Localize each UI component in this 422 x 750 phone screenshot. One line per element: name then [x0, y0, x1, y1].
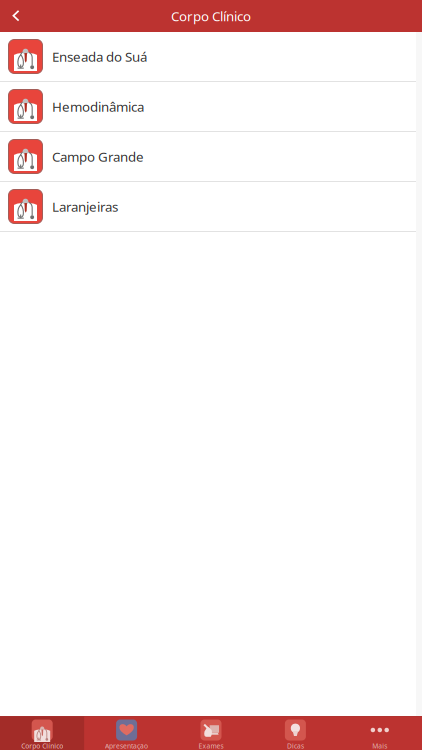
- button[interactable]: Corpo Clínico: [0, 716, 84, 750]
- button[interactable]: Laranjeiras: [0, 182, 422, 232]
- staticText: Campo Grande: [52, 148, 144, 165]
- button[interactable]: Exames: [169, 716, 253, 750]
- staticText: Dicas: [287, 741, 304, 750]
- button[interactable]: Apresentação: [84, 716, 169, 750]
- staticText: Hemodinâmica: [52, 98, 144, 115]
- button[interactable]: Mais: [338, 716, 422, 750]
- staticText: Mais: [372, 741, 387, 750]
- button[interactable]: Campo Grande: [0, 132, 422, 182]
- staticText: Apresentação: [105, 741, 148, 750]
- staticText: Exames: [198, 741, 223, 750]
- staticText: Enseada do Suá: [52, 48, 147, 65]
- button[interactable]: Back: [0, 0, 32, 32]
- button[interactable]: Hemodinâmica: [0, 82, 422, 132]
- staticText: Corpo Clínico: [171, 7, 251, 25]
- staticText: Corpo Clínico: [21, 741, 63, 750]
- staticText: Laranjeiras: [52, 198, 118, 215]
- button[interactable]: Enseada do Suá: [0, 32, 422, 82]
- button[interactable]: Dicas: [253, 716, 338, 750]
